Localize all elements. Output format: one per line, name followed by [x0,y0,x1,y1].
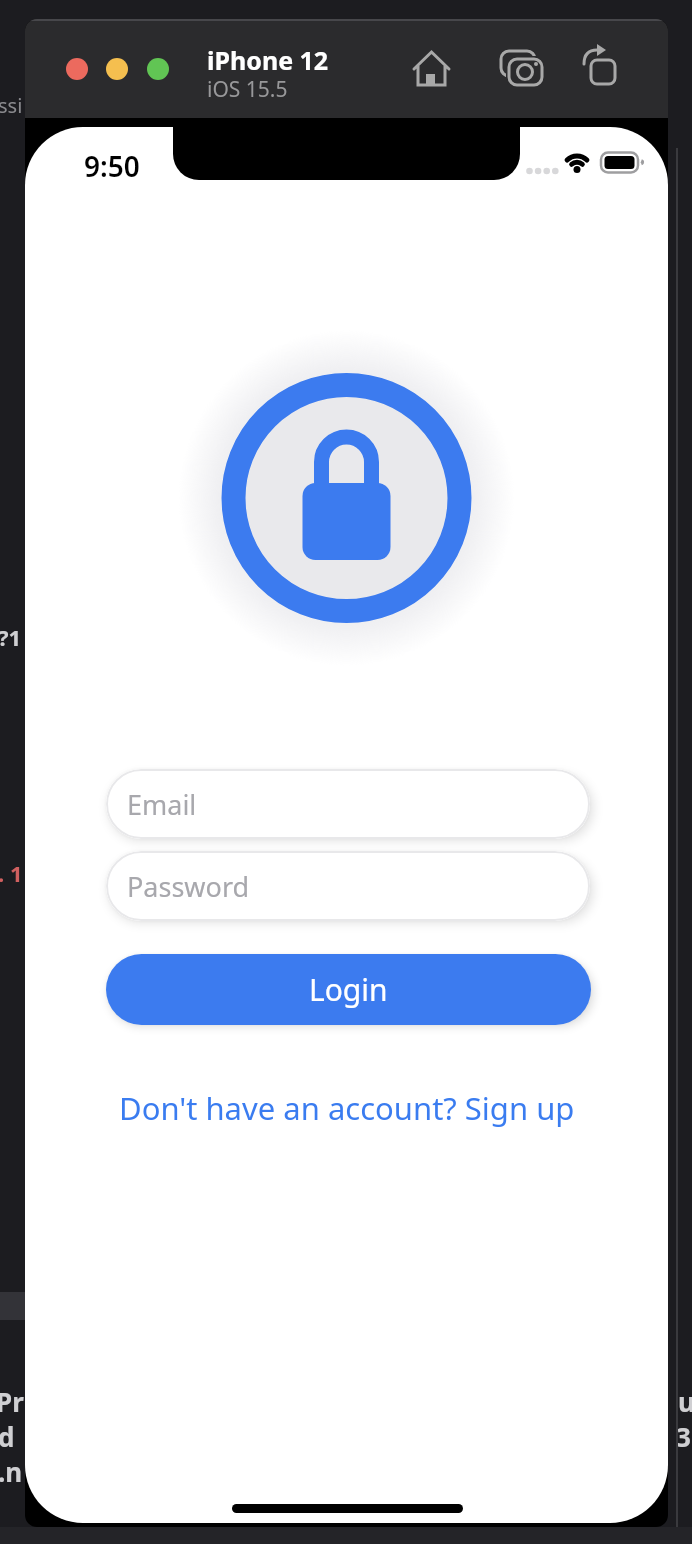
staticText: iOS 15.5 [207,75,288,104]
staticText: u [678,1384,692,1419]
staticText: .n [0,1454,23,1489]
button[interactable]: Password [106,851,590,921]
staticText: d [0,1419,15,1454]
staticText: Login [309,969,388,1010]
staticText: Password [127,868,250,905]
staticText: 9:50 [84,147,140,185]
staticText: iPhone 12 [207,43,329,77]
button[interactable]: Login [106,954,591,1025]
staticText: Pr [0,1384,24,1419]
staticText: ?1 [0,622,22,652]
button[interactable]: Don't have an account? Sign up [119,1087,575,1129]
staticText: 3 [676,1419,691,1454]
staticText: Email [127,786,197,823]
staticText: ssi [0,92,23,119]
staticText: . 1 [0,858,23,888]
button[interactable]: Email [106,769,590,839]
